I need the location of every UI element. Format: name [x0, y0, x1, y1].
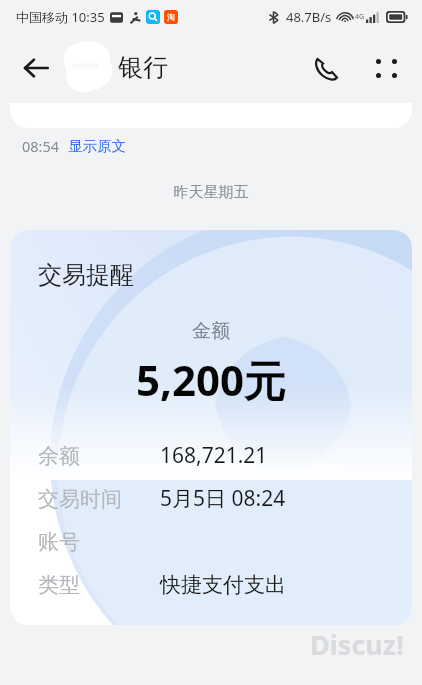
button[interactable]: Call [302, 44, 350, 92]
staticText: Discuz! [310, 626, 404, 663]
staticText: 账号 [38, 529, 80, 555]
staticText: 银行 [118, 52, 168, 83]
staticText: 昨天星期五 [0, 183, 422, 202]
staticText: 5,200元 [10, 351, 412, 408]
button[interactable]: Back [12, 44, 60, 92]
button[interactable]: 交易提醒 [10, 230, 412, 625]
staticText: 5月5日 08:24 [160, 484, 286, 513]
staticText: 168,721.21 [160, 441, 268, 470]
staticText: 显示原文 [68, 137, 126, 155]
staticText: 08:54 [22, 136, 60, 156]
staticText: 48.7B/s [286, 8, 332, 26]
button[interactable]: More options [362, 44, 410, 92]
staticText: 余额 [38, 443, 80, 469]
staticText: 类型 [38, 572, 80, 598]
staticText: 交易提醒 [38, 260, 134, 290]
staticText: 中国移动 10:35 [16, 8, 105, 26]
staticText: 快捷支付支出 [160, 572, 286, 598]
button[interactable]: 显示原文 [68, 137, 126, 155]
staticText: 金额 [10, 319, 412, 343]
staticText: 4G [355, 12, 365, 22]
staticText: 淘 [167, 12, 175, 22]
staticText: 交易时间 [38, 486, 122, 512]
